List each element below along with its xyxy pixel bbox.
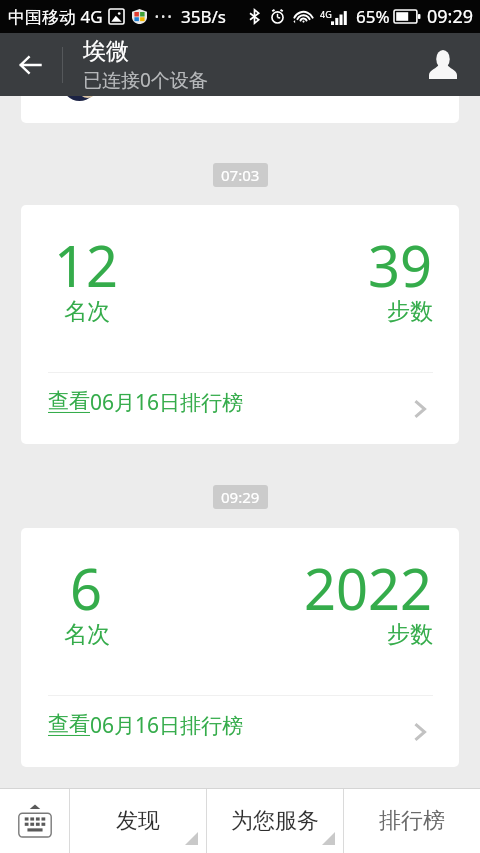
staticText: 发现 (116, 807, 160, 835)
staticText: 06月16日排行榜 (90, 711, 244, 740)
button[interactable]: 查看 (21, 696, 459, 767)
button[interactable]: Profile (406, 33, 480, 96)
staticText: 6 (70, 550, 103, 626)
button[interactable]: Keyboard (0, 789, 69, 853)
staticText: 65% (356, 5, 390, 28)
staticText: 4G (320, 8, 332, 20)
staticText: 步数 (387, 297, 433, 326)
staticText: 09:29 (221, 487, 260, 507)
staticText: 名次 (64, 297, 110, 326)
button[interactable]: 发现 (70, 789, 206, 853)
button[interactable]: 排行榜 (344, 789, 480, 853)
staticText: 为您服务 (231, 807, 319, 835)
staticText: 35B/s (181, 5, 226, 28)
staticText: 埃微 (83, 37, 129, 66)
button[interactable]: 为您服务 (207, 789, 343, 853)
staticText: 2022 (304, 550, 433, 626)
staticText: 已连接0个设备 (83, 67, 208, 93)
staticText: 07:03 (221, 165, 260, 185)
staticText: 排行榜 (379, 807, 445, 835)
staticText: 查看 (48, 388, 90, 414)
staticText: 步数 (387, 620, 433, 649)
staticText: 12 (54, 227, 119, 303)
staticText: 中国移动 4G (8, 5, 103, 28)
staticText: 09:29 (427, 4, 474, 29)
staticText: 39 (368, 227, 433, 303)
button[interactable]: 查看 (21, 373, 459, 444)
staticText: 06月16日排行榜 (90, 388, 244, 417)
staticText: 查看 (48, 711, 90, 737)
staticText: 名次 (64, 620, 110, 649)
button[interactable]: Back (0, 33, 62, 96)
staticText: • • • (155, 10, 172, 24)
